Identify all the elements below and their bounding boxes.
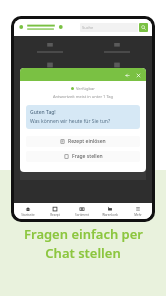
button[interactable]: Kachel bbox=[87, 41, 146, 53]
button[interactable]: Frage stellen bbox=[26, 151, 140, 162]
button[interactable]: Startseite bbox=[14, 203, 41, 219]
button[interactable]: Rezept einlösen bbox=[26, 136, 140, 147]
button[interactable]: Sortiment bbox=[68, 203, 96, 219]
staticText: Guten Tag! bbox=[30, 109, 56, 116]
staticText: Chat stellen bbox=[45, 244, 121, 262]
button[interactable]: Kachel bbox=[20, 61, 79, 73]
staticText: Antwortzeit meist in unter 1 Tag bbox=[20, 94, 146, 99]
button[interactable]: Suche bbox=[80, 23, 138, 32]
staticText: Rezept bbox=[50, 213, 60, 217]
button[interactable]: Warenkorb bbox=[96, 203, 124, 219]
staticText: Mehr bbox=[134, 213, 142, 217]
staticText: Warenkorb bbox=[102, 213, 118, 217]
button[interactable]: Mehr bbox=[124, 203, 152, 219]
button[interactable]: Kachel bbox=[87, 61, 146, 73]
staticText: Sortiment bbox=[75, 213, 89, 217]
button[interactable]: Suchen bbox=[139, 23, 148, 32]
staticText: Was können wir heute für Sie tun? bbox=[30, 118, 111, 125]
staticText: Frage stellen bbox=[72, 153, 103, 160]
staticText: Verfügbar bbox=[76, 86, 95, 91]
button[interactable]: Schließen bbox=[134, 71, 142, 79]
button[interactable]: Rezept bbox=[41, 203, 68, 219]
staticText: Rezept einlösen bbox=[68, 138, 106, 145]
button[interactable]: Kachel bbox=[20, 41, 79, 53]
staticText: Fragen einfach per bbox=[24, 225, 143, 243]
staticText: Startseite bbox=[21, 213, 35, 217]
button[interactable]: Zurück bbox=[123, 71, 131, 79]
staticText: Suche bbox=[82, 25, 94, 30]
